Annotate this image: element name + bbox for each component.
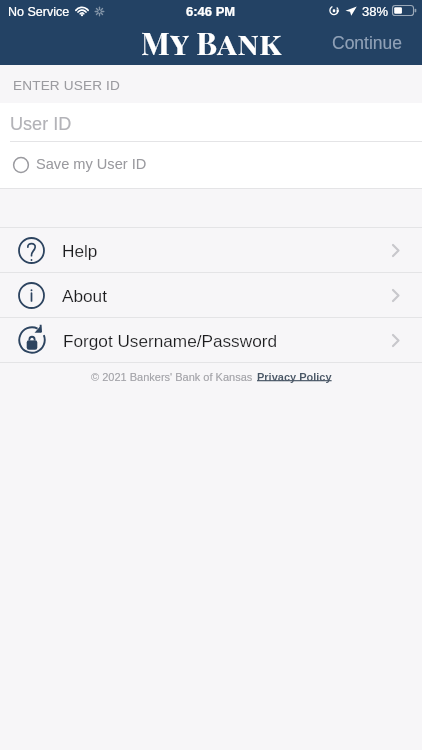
button[interactable]: Help xyxy=(0,228,422,272)
staticText: Continue xyxy=(332,33,403,53)
staticText: Save my User ID xyxy=(36,156,147,172)
staticText: 6:46 PM xyxy=(186,4,236,19)
staticText: © 2021 Bankers' Bank of Kansas xyxy=(91,371,253,383)
staticText: My Bank xyxy=(141,21,282,62)
button[interactable]: Continue xyxy=(318,25,422,61)
button[interactable]: Forgot Username/Password xyxy=(0,318,422,362)
button[interactable]: About xyxy=(0,273,422,317)
staticText: No Service xyxy=(8,5,70,19)
staticText: ENTER USER ID xyxy=(13,78,120,93)
staticText: Help xyxy=(62,241,98,260)
staticText: User ID xyxy=(10,114,72,134)
button[interactable]: Save my User ID xyxy=(0,142,422,188)
staticText: 38% xyxy=(362,4,389,19)
staticText: Forgot Username/Password xyxy=(63,331,277,350)
staticText: About xyxy=(62,286,107,305)
button[interactable]: Privacy Policy xyxy=(257,371,332,383)
